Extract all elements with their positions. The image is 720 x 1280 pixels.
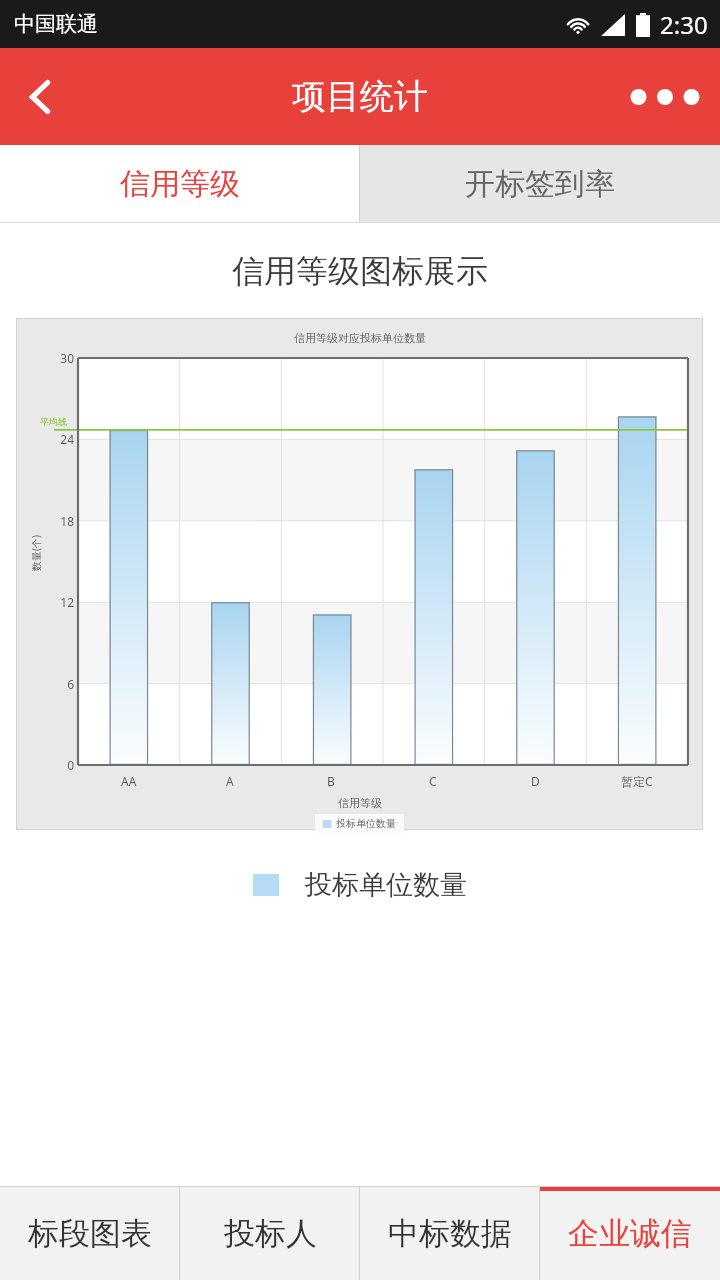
button[interactable]: More options [610,57,720,137]
staticText: 企业诚信 [568,1214,692,1253]
staticText: 信用等级 [338,796,382,810]
staticText: 0 [50,757,74,773]
button[interactable]: Back [0,52,80,142]
staticText: 信用等级对应投标单位数量 [294,331,426,345]
staticText: AA [121,773,137,789]
button[interactable]: 投标人 [180,1187,360,1280]
staticText: 12 [50,594,74,610]
staticText: 中标数据 [388,1214,512,1253]
staticText: 信用等级图标展示 [232,251,488,291]
staticText: 项目统计 [292,75,428,118]
staticText: 平均线 [40,416,67,427]
staticText: 标段图表 [28,1214,152,1253]
staticText: 投标人 [224,1214,317,1253]
staticText: B [327,773,335,789]
staticText: 2:30 [660,8,708,41]
button[interactable]: 标段图表 [0,1187,180,1280]
button[interactable]: 开标签到率 [360,145,720,222]
staticText: 开标签到率 [465,165,615,203]
staticText: 6 [50,676,74,692]
staticText: 18 [50,513,74,529]
staticText: 投标单位数量 [336,817,396,830]
button[interactable]: 信用等级 [0,145,359,222]
staticText: C [429,773,437,789]
staticText: D [531,773,540,789]
staticText: A [226,773,234,789]
staticText: 投标单位数量 [305,868,467,902]
staticText: 30 [50,350,74,366]
staticText: 信用等级 [120,165,240,203]
staticText: 中国联通 [14,11,98,37]
staticText: 暂定C [621,773,653,789]
button[interactable]: 中标数据 [360,1187,540,1280]
button[interactable]: 企业诚信 [540,1187,720,1280]
staticText: 数量(个) [29,535,43,571]
staticText: 24 [50,431,74,447]
